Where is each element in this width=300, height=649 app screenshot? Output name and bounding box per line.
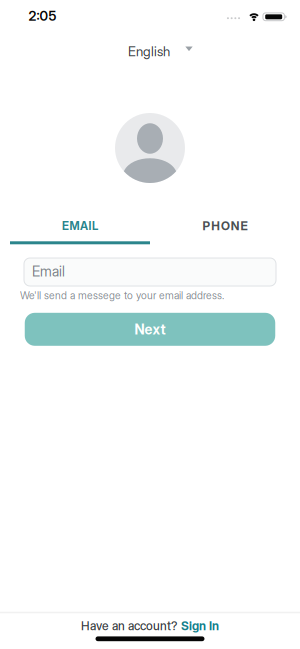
button[interactable]: Have an account? [81,619,219,633]
staticText: We'll send a messege to your email addre… [20,289,224,302]
staticText: Have an account? [81,619,177,633]
button[interactable]: EMAIL [10,211,150,241]
staticText: English [128,43,170,59]
button[interactable]: English [110,39,200,63]
staticText: Next [134,321,165,338]
staticText: EMAIL [62,219,98,233]
button[interactable]: PHONE [155,211,295,241]
button[interactable]: Email [24,258,276,286]
staticText: Email [32,263,65,280]
staticText: 2:05 [28,8,56,24]
staticText: Sign In [181,619,219,633]
staticText: PHONE [202,219,248,233]
button[interactable]: Next [25,313,275,346]
